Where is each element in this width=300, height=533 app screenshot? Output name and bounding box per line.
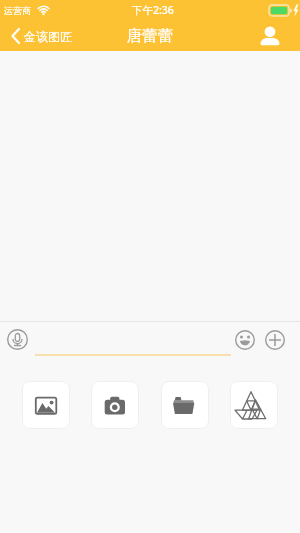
button[interactable]	[235, 330, 255, 350]
staticText: 运营商	[4, 5, 31, 16]
button[interactable]	[260, 26, 300, 46]
staticText: 金该图匠	[24, 29, 72, 44]
button[interactable]	[161, 381, 209, 429]
button[interactable]	[265, 330, 285, 350]
button[interactable]	[91, 381, 139, 429]
staticText: 下午2:36	[132, 3, 174, 17]
button[interactable]: 金该图匠	[0, 28, 72, 44]
staticText: 唐蕾蕾	[127, 26, 174, 46]
button[interactable]	[230, 381, 278, 429]
button[interactable]	[22, 381, 70, 429]
button[interactable]	[7, 329, 28, 350]
